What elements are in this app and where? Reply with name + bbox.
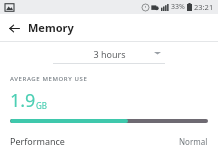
- staticText: Performance: [10, 135, 65, 147]
- button[interactable]: Back: [4, 18, 24, 38]
- staticText: Normal: [179, 136, 208, 147]
- button[interactable]: 3 hours: [53, 43, 165, 64]
- staticText: GB: [36, 100, 48, 111]
- staticText: 1.9: [10, 88, 36, 113]
- staticText: 23:21: [194, 2, 214, 12]
- staticText: Memory: [28, 20, 74, 35]
- staticText: 33%: [171, 2, 185, 12]
- staticText: 3 hours: [93, 48, 126, 60]
- button[interactable]: Performance: [0, 132, 218, 150]
- staticText: AVERAGE MEMORY USE: [10, 75, 88, 83]
